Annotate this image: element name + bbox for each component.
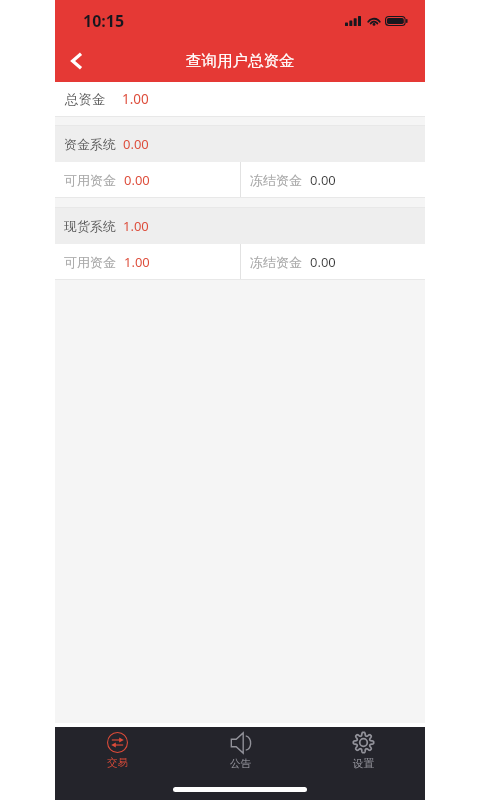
staticText: 查询用户总资金 — [186, 51, 295, 71]
staticText: 1.00 — [124, 253, 150, 271]
staticText: 可用资金 — [64, 254, 116, 270]
button[interactable]: 可用资金 — [55, 162, 425, 197]
staticText: 设置 — [353, 757, 374, 770]
staticText: 1.00 — [123, 217, 149, 235]
staticText: 0.00 — [310, 253, 336, 271]
staticText: 公告 — [230, 757, 251, 770]
staticText: 0.00 — [310, 171, 336, 189]
button[interactable]: 可用资金 — [55, 244, 425, 279]
button[interactable]: 设置 — [302, 727, 425, 780]
staticText: 10:15 — [83, 10, 125, 32]
staticText: 0.00 — [123, 135, 149, 153]
staticText: 冻结资金 — [250, 172, 302, 188]
button[interactable]: 交易 — [55, 727, 179, 780]
staticText: 资金系统 — [64, 136, 116, 152]
staticText: 冻结资金 — [250, 254, 302, 270]
staticText: 可用资金 — [64, 172, 116, 188]
button[interactable]: 公告 — [179, 727, 302, 780]
button[interactable]: 总资金 — [55, 82, 425, 116]
staticText: 交易 — [107, 756, 128, 769]
staticText: 0.00 — [124, 171, 150, 189]
staticText: 总资金 — [65, 91, 106, 108]
button[interactable]: Back — [55, 37, 97, 82]
button[interactable]: 资金系统 — [55, 126, 425, 162]
staticText: 现货系统 — [64, 218, 116, 234]
staticText: 1.00 — [122, 90, 149, 108]
button[interactable]: 现货系统 — [55, 208, 425, 244]
